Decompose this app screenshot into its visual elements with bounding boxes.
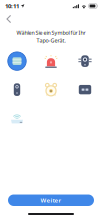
- staticText: Weiter: [40, 196, 61, 204]
- button[interactable]: Camera: [68, 50, 102, 72]
- staticText: 10:11: [5, 2, 19, 10]
- button[interactable]: Display: [68, 79, 102, 101]
- button[interactable]: Weiter: [8, 194, 94, 206]
- button[interactable]: Siren: [34, 50, 68, 72]
- button[interactable]: Hub: [0, 107, 34, 129]
- staticText: Wählen Sie ein Symbol für Ihr: [16, 29, 85, 36]
- button[interactable]: Smart Plug: [0, 50, 34, 72]
- staticText: Tapo-Gerät.: [36, 37, 65, 44]
- button[interactable]: Alarm Clock: [34, 79, 68, 101]
- button[interactable]: Back: [2, 13, 16, 25]
- button[interactable]: Sensor: [0, 79, 34, 101]
